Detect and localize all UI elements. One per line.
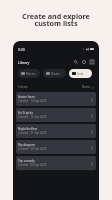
button[interactable]: Search [72, 58, 80, 66]
button[interactable]: Name [81, 85, 95, 89]
staticText: Night thrillers [18, 127, 38, 131]
button[interactable]: More options [88, 112, 95, 119]
button[interactable]: Shows [43, 69, 66, 78]
button[interactable]: More options [88, 128, 95, 135]
staticText: Sky dragons [18, 143, 35, 147]
staticText: Top comedy [18, 159, 35, 163]
staticText: Shows [51, 72, 60, 76]
staticText: Anime faves [18, 95, 35, 99]
button[interactable]: Lists [69, 69, 92, 78]
staticText: Lists [77, 72, 84, 76]
button[interactable]: Layout options [88, 58, 96, 66]
staticText: Create and explore custom lists [22, 11, 90, 28]
staticText: Created · 04 Sep 2024 [18, 163, 47, 167]
button[interactable]: More options [88, 96, 95, 103]
staticText: 5 items [18, 85, 28, 89]
staticText: Created · 12 Sep 2024 [18, 115, 47, 119]
button[interactable]: Sky dragons [16, 140, 96, 154]
button[interactable]: More options [88, 160, 95, 167]
staticText: Created · 21 Sep 2024 [18, 131, 47, 135]
button[interactable]: Movies [18, 69, 40, 78]
staticText: Movies [26, 72, 36, 76]
staticText: Created · 30 Sep 2024 [18, 147, 47, 151]
staticText: Name [82, 85, 90, 89]
button[interactable]: Anime faves [16, 92, 96, 106]
staticText: Library [18, 60, 30, 65]
button[interactable]: Sci-Fi picks [16, 108, 96, 122]
button[interactable]: Account [80, 58, 88, 66]
button[interactable]: Top comedy [16, 156, 96, 170]
button[interactable]: Night thrillers [16, 124, 96, 138]
button[interactable]: More options [88, 144, 95, 151]
staticText: 9:30 [18, 47, 25, 52]
staticText: Created · 14 Sep 2024 [18, 99, 47, 103]
staticText: Sci-Fi picks [18, 111, 33, 115]
